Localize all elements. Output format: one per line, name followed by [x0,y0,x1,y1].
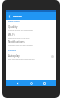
button[interactable]: Wi-Fi [6,32,56,39]
staticText: Choose quality for downloads [8,29,34,31]
staticText: Autoplay [8,54,20,58]
staticText: Video quality [8,20,20,23]
staticText: Settings [13,15,22,18]
staticText: Manage how you get notified [8,44,33,46]
button[interactable]: Home [29,81,34,86]
button[interactable]: Notifications [6,39,56,46]
button[interactable]: Back [15,81,20,86]
button[interactable]: Autoplay [6,53,56,60]
staticText: Playback [8,49,16,52]
staticText: Download over Wi-Fi only [8,37,30,39]
button[interactable]: Back [7,14,12,19]
button[interactable]: Quality [6,24,56,31]
button[interactable]: Recents [42,81,47,86]
staticText: Wi-Fi [8,33,15,37]
staticText: Play next episode automatically [8,58,35,60]
staticText: Quality [8,25,18,29]
staticText: Notifications [8,40,25,44]
